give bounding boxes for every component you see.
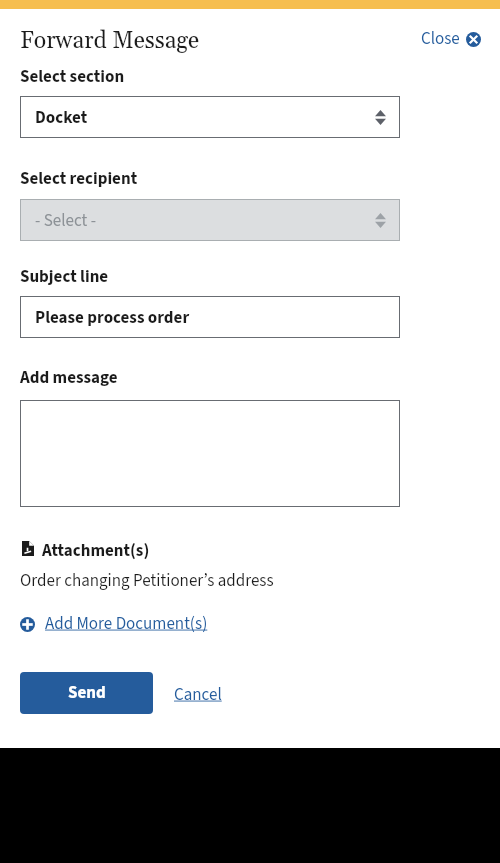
button[interactable]: Close: [419, 25, 483, 53]
staticText: Order changing Petitioner’s address: [20, 569, 274, 593]
button[interactable]: Please process order: [20, 296, 400, 338]
staticText: Docket: [35, 106, 88, 130]
other: Close: [466, 32, 481, 47]
staticText: Select recipient: [20, 167, 138, 191]
button[interactable]: Add More Document(s): [20, 610, 208, 638]
staticText: Add message: [20, 366, 118, 390]
button[interactable]: Docket: [20, 96, 400, 138]
button[interactable]: - Select -: [20, 199, 400, 241]
button[interactable]: [20, 400, 400, 507]
staticText: Add More Document(s): [45, 612, 208, 636]
staticText: Close: [421, 27, 460, 51]
staticText: - Select -: [35, 209, 96, 233]
staticText: Attachment(s): [42, 539, 150, 563]
button[interactable]: Cancel: [172, 681, 224, 709]
staticText: Select section: [20, 65, 125, 89]
staticText: Please process order: [35, 306, 190, 330]
staticText: Forward Message: [20, 27, 200, 56]
button[interactable]: Send: [20, 672, 153, 714]
staticText: Subject line: [20, 265, 109, 289]
staticText: Cancel: [174, 683, 222, 707]
staticText: Send: [68, 681, 106, 705]
